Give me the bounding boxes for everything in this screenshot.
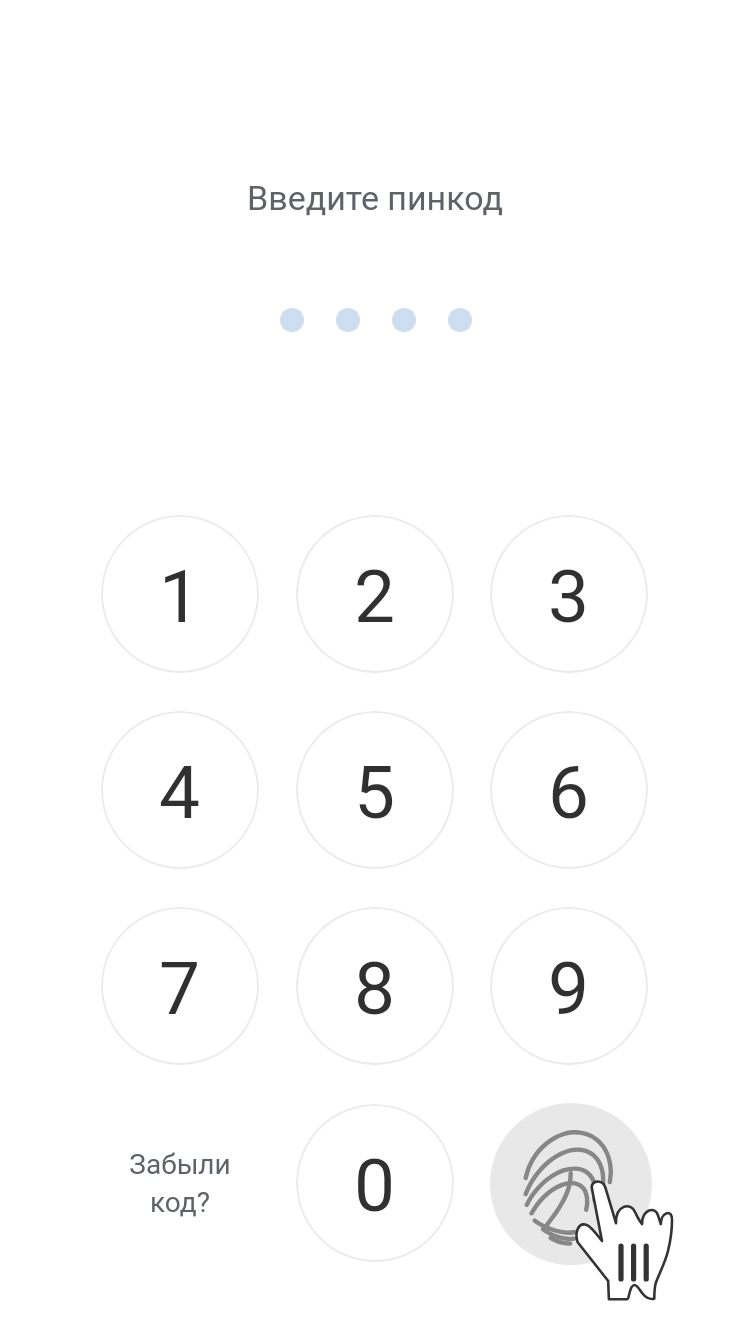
button[interactable]: 1: [101, 515, 259, 673]
button[interactable]: 8: [296, 907, 454, 1065]
staticText: 3: [548, 554, 590, 640]
button[interactable]: Unlock with fingerprint: [490, 1103, 690, 1313]
staticText: 0: [354, 1143, 396, 1229]
staticText: 7: [159, 946, 201, 1032]
button[interactable]: 9: [490, 907, 648, 1065]
staticText: 5: [354, 750, 396, 836]
staticText: 9: [548, 946, 590, 1032]
button[interactable]: 7: [101, 907, 259, 1065]
staticText: 8: [354, 946, 396, 1032]
button[interactable]: 5: [296, 711, 454, 869]
staticText: 4: [159, 750, 201, 836]
button[interactable]: 4: [101, 711, 259, 869]
staticText: Введите пинкод: [0, 178, 750, 218]
button[interactable]: 0: [296, 1104, 454, 1262]
staticText: 6: [548, 750, 590, 836]
button[interactable]: 6: [490, 711, 648, 869]
button[interactable]: 2: [296, 515, 454, 673]
staticText: 2: [354, 554, 396, 640]
staticText: Забыли код?: [129, 1148, 231, 1219]
button[interactable]: 3: [490, 515, 648, 673]
staticText: 1: [159, 554, 201, 640]
button[interactable]: Забыли код?: [101, 1104, 259, 1262]
